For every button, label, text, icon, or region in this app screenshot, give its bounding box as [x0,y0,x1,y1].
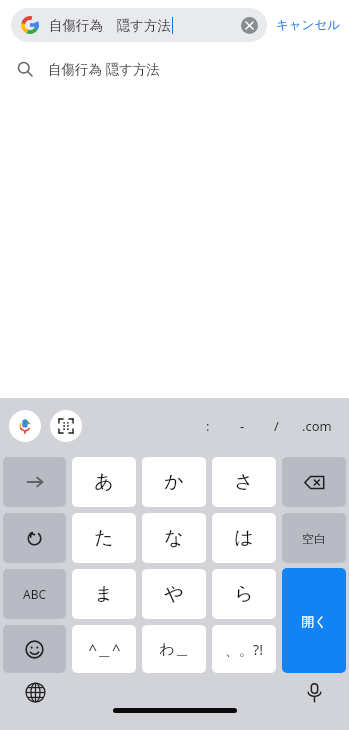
staticText: ら [234,582,254,606]
button[interactable]: .com [293,409,341,443]
staticText: あ [94,470,114,494]
button[interactable]: 自傷行為 隠す方法 [11,8,267,42]
button[interactable]: さ [212,457,276,507]
staticText: 、。?! [225,640,263,659]
staticText: か [164,470,184,494]
button[interactable]: か [142,457,206,507]
staticText: .com [302,417,332,435]
button[interactable]: や [142,569,206,619]
button[interactable] [3,457,66,507]
staticText: は [234,526,254,550]
button[interactable]: Voice input [297,676,331,708]
button[interactable]: わ＿ [142,625,206,673]
button[interactable]: Clear [234,10,264,40]
button[interactable]: な [142,513,206,563]
staticText: ^＿^ [88,639,121,659]
button[interactable]: / [259,409,293,443]
button[interactable]: - [225,409,259,443]
button[interactable]: ABC [3,569,66,619]
staticText: ABC [23,586,47,602]
button[interactable]: ^＿^ [72,625,136,673]
button[interactable]: Lens scan [50,410,82,442]
staticText: さ [234,470,254,494]
button[interactable]: キャンセル [267,5,349,45]
button[interactable]: た [72,513,136,563]
button[interactable]: Change keyboard language [18,676,52,708]
button[interactable]: 空白 [282,513,346,563]
button[interactable]: あ [72,457,136,507]
staticText: - [240,417,245,435]
staticText: や [164,582,184,606]
staticText: キャンセル [276,17,340,33]
staticText: 自傷行為 隠す方法 [49,16,171,34]
staticText: / [274,417,279,435]
staticText: わ＿ [159,640,190,659]
button[interactable]: ら [212,569,276,619]
staticText: 開く [301,613,328,629]
button[interactable]: 自傷行為 隠す方法 [0,50,349,88]
button[interactable]: Undo [3,513,66,563]
staticText: た [94,526,114,550]
button[interactable]: Backspace [282,457,346,507]
button[interactable]: 開く [282,568,346,673]
button[interactable]: Voice search [9,410,41,442]
button[interactable]: : [191,409,225,443]
staticText: 自傷行為 隠す方法 [48,60,160,78]
staticText: : [206,417,210,435]
staticText: な [164,526,184,550]
button[interactable]: ま [72,569,136,619]
staticText: 空白 [302,531,326,546]
button[interactable]: Emoji [3,625,66,673]
staticText: ま [94,582,114,606]
button[interactable]: は [212,513,276,563]
button[interactable]: 、。?! [212,625,276,673]
